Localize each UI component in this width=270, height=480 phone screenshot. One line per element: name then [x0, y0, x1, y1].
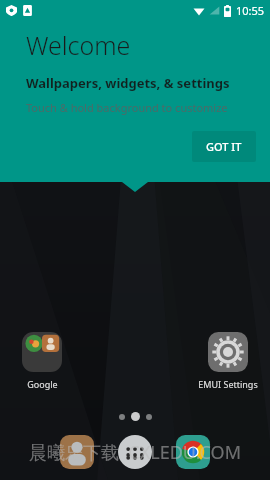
staticText: Google [27, 378, 58, 390]
button[interactable]: Chrome [173, 432, 213, 472]
button[interactable]: Google [6, 330, 78, 392]
staticText: EMUI Settings [198, 378, 258, 390]
staticText: Welcome [26, 28, 131, 62]
staticText: GOT IT [206, 139, 242, 154]
button[interactable]: EMUI Settings [192, 330, 264, 392]
button[interactable]: Contacts [57, 432, 97, 472]
button[interactable]: All apps [115, 432, 155, 472]
staticText: Touch & hold background to customize [26, 100, 228, 115]
staticText: Wallpapers, widgets, & settings [26, 74, 230, 92]
staticText: 晨曦乐下载 CXLEDU.COM [29, 440, 241, 465]
staticText: 10:55 [236, 3, 265, 18]
button[interactable]: GOT IT [192, 131, 256, 162]
